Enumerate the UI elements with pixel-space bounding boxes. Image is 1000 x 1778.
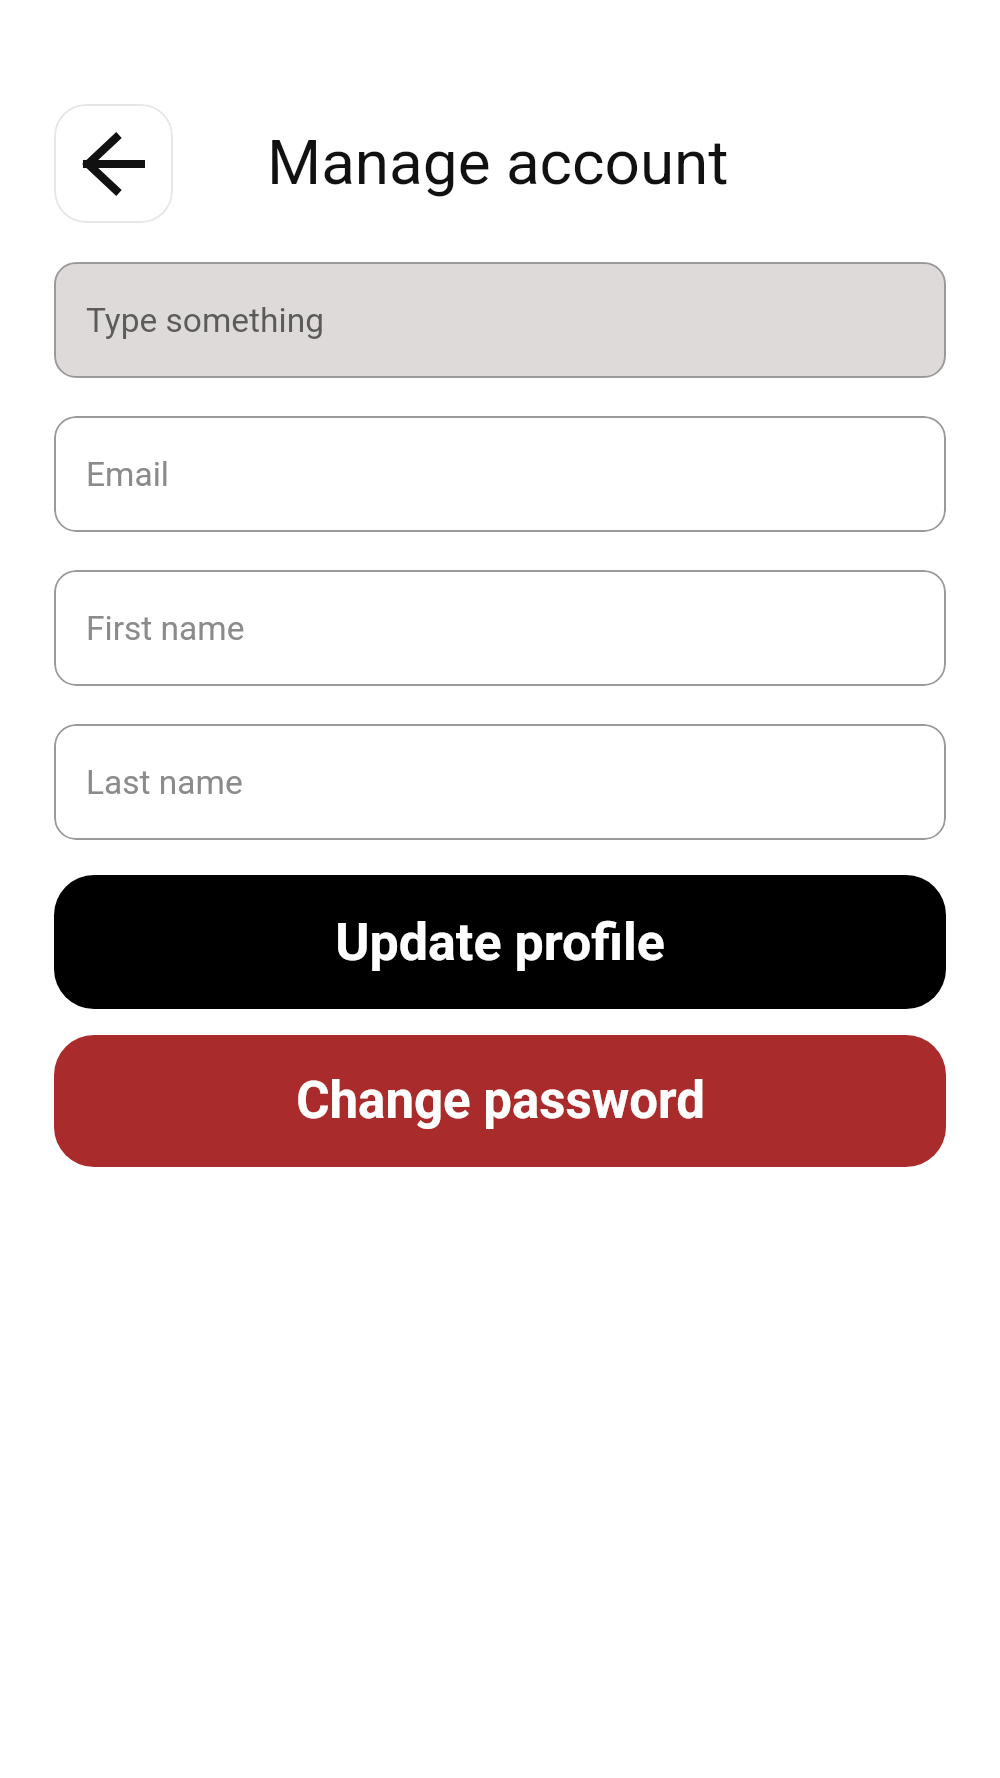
button[interactable]: First name (54, 570, 946, 686)
staticText: Email (86, 455, 169, 494)
button[interactable]: Update profile (54, 875, 946, 1009)
button[interactable]: Type something (54, 262, 946, 378)
staticText: Update profile (335, 912, 665, 973)
staticText: Last name (86, 763, 243, 802)
staticText: First name (86, 609, 245, 648)
staticText: Type something (86, 301, 324, 340)
staticText: Change password (296, 1071, 705, 1131)
button[interactable]: Back (54, 104, 173, 223)
button[interactable]: Last name (54, 724, 946, 840)
button[interactable]: Change password (54, 1035, 946, 1167)
staticText: Manage account (267, 126, 729, 199)
button[interactable]: Email (54, 416, 946, 532)
